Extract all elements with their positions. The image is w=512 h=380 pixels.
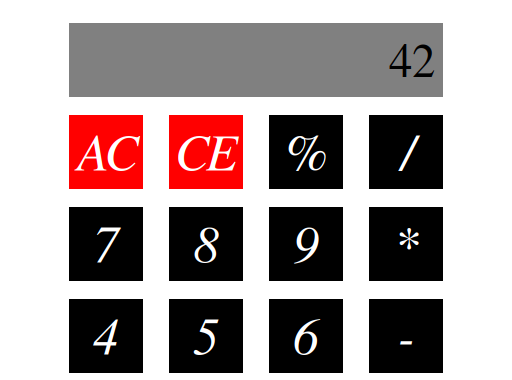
staticText: CE — [176, 129, 236, 181]
button[interactable]: Clear entry — [169, 115, 243, 189]
staticText: / — [398, 129, 413, 181]
staticText: 7 — [93, 221, 119, 273]
button[interactable]: 9 — [269, 207, 343, 281]
staticText: 42 — [389, 40, 435, 86]
staticText: AC — [74, 129, 137, 181]
staticText: - — [397, 313, 414, 365]
button[interactable]: Minus — [369, 299, 443, 373]
button[interactable]: 4 — [69, 299, 143, 373]
staticText: 4 — [93, 313, 119, 365]
button[interactable]: 7 — [69, 207, 143, 281]
button[interactable]: 8 — [169, 207, 243, 281]
staticText: % — [284, 129, 327, 181]
button[interactable]: 6 — [269, 299, 343, 373]
button[interactable]: Multiply — [369, 207, 443, 281]
button[interactable]: Percent — [269, 115, 343, 189]
staticText: 6 — [293, 313, 319, 365]
staticText: 5 — [193, 313, 219, 365]
staticText: 9 — [293, 221, 319, 273]
button[interactable]: All clear — [69, 115, 143, 189]
button[interactable]: Divide — [369, 115, 443, 189]
staticText: 8 — [193, 221, 219, 273]
staticText: * — [393, 221, 419, 273]
button[interactable]: 5 — [169, 299, 243, 373]
